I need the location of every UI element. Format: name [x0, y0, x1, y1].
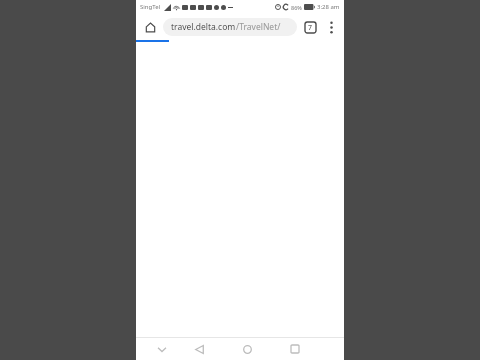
button[interactable]: More options	[321, 17, 341, 37]
button[interactable]: Back	[189, 339, 209, 359]
button[interactable]: Home	[139, 16, 161, 38]
button[interactable]: Home	[237, 339, 257, 359]
staticText: 86%	[291, 4, 302, 11]
staticText: 3:28 am	[317, 3, 340, 11]
button[interactable]: travel.delta.com	[163, 18, 297, 36]
button[interactable]: Recent apps	[285, 339, 305, 359]
staticText: 7	[308, 23, 313, 33]
staticText: SingTel	[140, 3, 161, 11]
button[interactable]: Switch tabs, 7 open	[300, 17, 320, 37]
staticText: /TravelNet/	[236, 21, 281, 33]
staticText: travel.delta.com	[171, 21, 236, 33]
button[interactable]: Hide keyboard	[152, 339, 172, 359]
